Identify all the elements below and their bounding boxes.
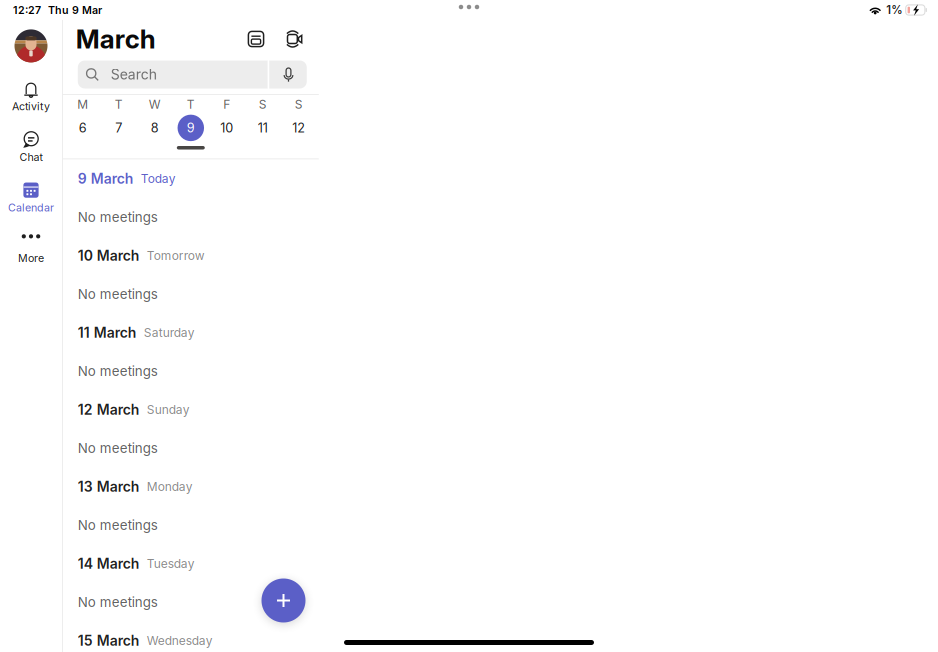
button[interactable]: More — [0, 227, 62, 269]
staticText: 6 — [79, 120, 87, 135]
staticText: T — [115, 97, 123, 112]
button[interactable]: Voice search — [269, 60, 308, 88]
staticText: No meetings — [78, 209, 158, 225]
staticText: 9 — [187, 120, 195, 135]
staticText: 10 March — [78, 247, 140, 264]
button[interactable]: M — [66, 95, 100, 146]
staticText: No meetings — [78, 594, 158, 610]
staticText: S — [259, 97, 267, 112]
staticText: W — [149, 97, 161, 112]
staticText: March — [76, 23, 156, 55]
button[interactable]: F — [210, 95, 244, 146]
staticText: No meetings — [78, 440, 158, 456]
button[interactable]: 15 March — [63, 621, 319, 652]
staticText: No meetings — [78, 363, 158, 379]
staticText: Sunday — [147, 402, 190, 417]
staticText: F — [223, 97, 230, 112]
button[interactable]: Change calendar view — [242, 25, 270, 53]
staticText: 12:27 — [13, 3, 41, 16]
button[interactable]: W — [138, 95, 172, 146]
button[interactable]: T — [102, 95, 136, 146]
staticText: Wednesday — [147, 633, 213, 648]
staticText: No meetings — [78, 286, 158, 302]
button[interactable]: 12 March — [63, 390, 319, 429]
staticText: M — [77, 97, 88, 112]
staticText: 14 March — [78, 555, 140, 572]
staticText: Thu 9 Mar — [48, 3, 102, 16]
staticText: No meetings — [78, 517, 158, 533]
button[interactable]: Activity — [0, 75, 62, 117]
button[interactable]: 11 March — [63, 313, 319, 352]
staticText: Calendar — [8, 201, 54, 214]
staticText: More — [18, 252, 44, 265]
staticText: 7 — [115, 120, 122, 135]
staticText: 15 March — [78, 632, 140, 649]
button[interactable]: 10 March — [63, 236, 319, 275]
button[interactable]: Profile — [14, 29, 47, 62]
staticText: 8 — [151, 120, 159, 135]
staticText: 12 March — [78, 401, 140, 418]
staticText: Tuesday — [147, 556, 195, 571]
button[interactable]: New event — [261, 578, 306, 623]
staticText: 1% — [886, 3, 902, 17]
staticText: Search — [111, 66, 157, 83]
staticText: 11 — [258, 120, 268, 135]
staticText: Today — [141, 171, 176, 186]
staticText: Monday — [147, 479, 193, 494]
button[interactable]: 14 March — [63, 544, 319, 583]
staticText: Chat — [19, 150, 42, 163]
button[interactable]: S — [246, 95, 280, 146]
staticText: Saturday — [144, 325, 195, 340]
button[interactable]: Calendar — [0, 176, 62, 218]
button[interactable]: T — [174, 95, 208, 146]
staticText: Activity — [12, 100, 50, 113]
staticText: 11 March — [78, 324, 137, 341]
button[interactable]: S — [282, 95, 316, 146]
button[interactable]: Meet now — [281, 25, 309, 53]
button[interactable]: 9 March — [63, 159, 319, 198]
staticText: S — [295, 97, 303, 112]
staticText: 13 March — [78, 478, 140, 495]
staticText: 9 March — [78, 170, 134, 187]
staticText: T — [187, 97, 195, 112]
staticText: 10 — [220, 120, 233, 135]
button[interactable]: Chat — [0, 125, 62, 167]
button[interactable]: 13 March — [63, 467, 319, 506]
staticText: Tomorrow — [147, 248, 205, 263]
staticText: 12 — [292, 120, 305, 135]
